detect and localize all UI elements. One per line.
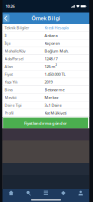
staticText: 126 m²	[44, 64, 56, 69]
button[interactable]: Teknik Bilgiler	[2, 24, 89, 32]
staticText: Mahalle/Köy	[4, 48, 25, 54]
button[interactable]: Tab 5	[72, 189, 89, 197]
button[interactable]: Yapı Yılı	[2, 78, 89, 86]
button[interactable]: Profil	[2, 109, 89, 117]
staticText: İl	[4, 33, 6, 38]
staticText: 2019	[44, 79, 52, 85]
staticText: 1248 / 7	[44, 56, 57, 61]
button[interactable]: Tab 1	[2, 189, 20, 197]
button[interactable]: Daire Tipi	[2, 101, 89, 109]
staticText: Betonarme	[44, 87, 64, 92]
staticText: 1.450.000 TL	[44, 71, 65, 77]
staticText: İlçe	[4, 40, 10, 46]
staticText: Kat Mülkiyeti	[44, 110, 66, 116]
button[interactable]: Bina	[2, 86, 89, 94]
staticText: 3+1 Daire	[44, 102, 61, 108]
staticText: Kredi Hesapla	[44, 25, 68, 30]
button[interactable]: Tab 2	[20, 189, 37, 197]
staticText: Bina	[4, 87, 12, 92]
staticText: Yapı Yılı	[4, 79, 17, 85]
staticText: Profil	[4, 110, 13, 116]
staticText: Merkez	[44, 95, 58, 100]
staticText: Fiyatlandırma gönder	[24, 120, 67, 126]
staticText: Daire Tipi	[4, 102, 21, 108]
button[interactable]: Mevkii	[2, 94, 89, 102]
button[interactable]: Ada/Parsel	[2, 55, 89, 63]
staticText: Ada/Parsel	[4, 56, 23, 61]
button[interactable]: Mahalle/Köy	[2, 47, 89, 55]
staticText: Teknik Bilgiler	[4, 25, 29, 30]
button[interactable]: Back	[3, 14, 9, 22]
staticText: Bağlum Mah.	[44, 48, 68, 54]
staticText: Keçiören	[44, 40, 59, 46]
button[interactable]: Alan	[2, 63, 89, 71]
button[interactable]: Tab 3	[37, 189, 55, 197]
staticText: Fiyat	[4, 71, 12, 77]
button[interactable]: Tab 4	[55, 189, 72, 197]
button[interactable]: İl	[2, 32, 89, 40]
button[interactable]: Fiyat	[2, 70, 89, 78]
staticText: Mevkii	[4, 95, 16, 100]
staticText: Alan	[4, 64, 12, 69]
staticText: Örnek Bilgi	[31, 15, 60, 22]
staticText: Ankara	[44, 33, 57, 38]
button[interactable]: Fiyatlandırma gönder	[3, 118, 88, 129]
button[interactable]: İlçe	[2, 39, 89, 47]
staticText: 10:26	[5, 4, 14, 9]
